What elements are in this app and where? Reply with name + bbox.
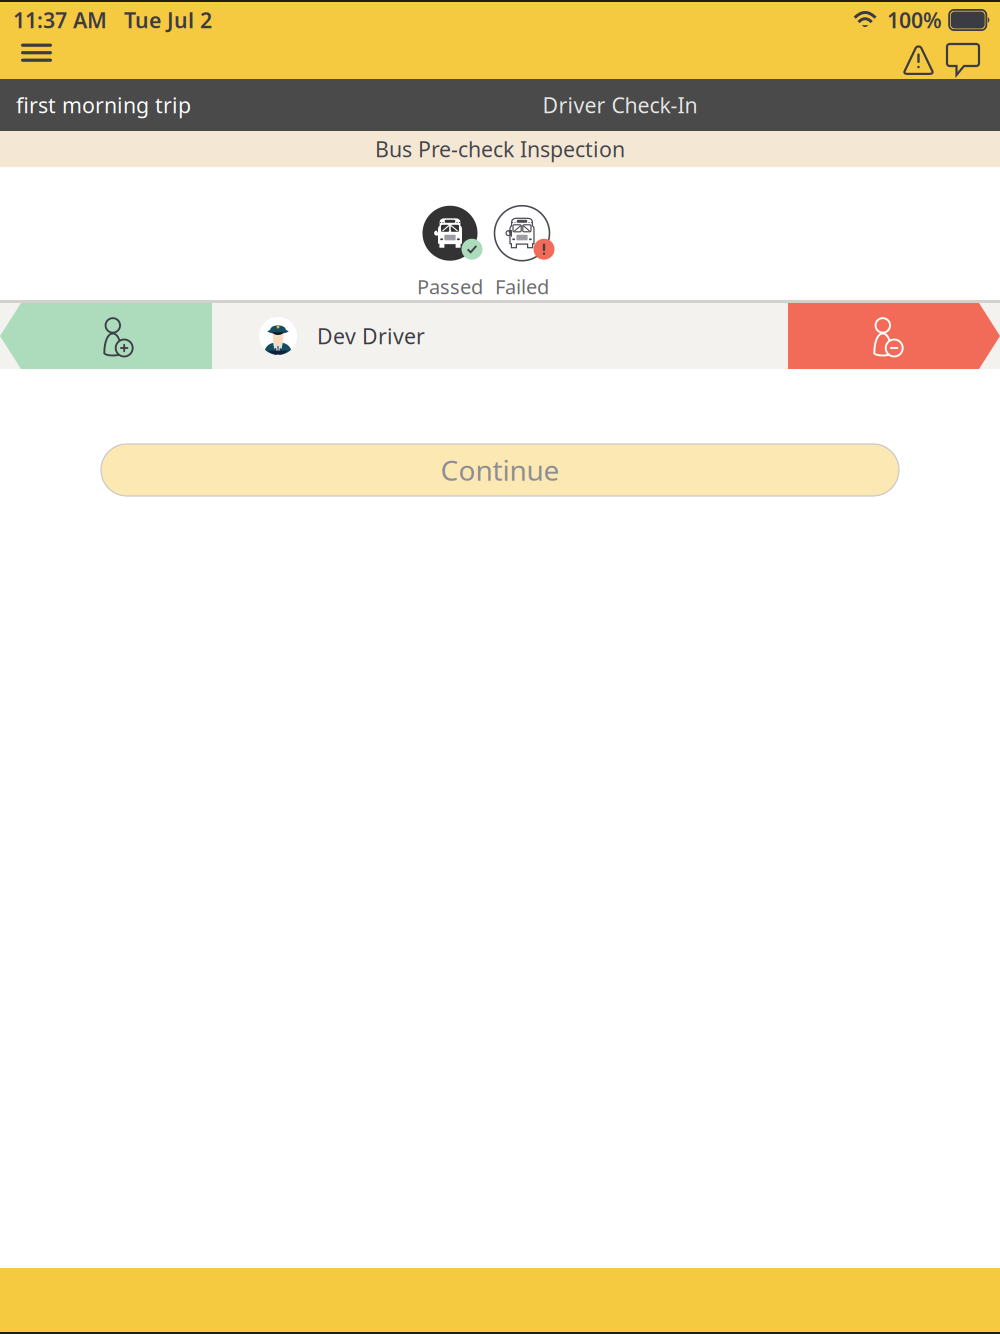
button[interactable]: Menu xyxy=(21,40,52,79)
button[interactable]: Remove driver xyxy=(788,303,1000,369)
staticText: Bus Pre-check Inspection xyxy=(375,135,625,163)
button[interactable]: Continue xyxy=(101,444,899,496)
staticText: Dev Driver xyxy=(317,322,425,350)
staticText: Continue xyxy=(440,451,559,489)
staticText: Driver Check-In xyxy=(542,91,697,119)
staticText: Passed xyxy=(417,273,483,300)
button[interactable]: Passed xyxy=(407,201,493,301)
staticText: Failed xyxy=(495,273,549,300)
button[interactable]: Dev Driver xyxy=(212,303,788,369)
staticText: Tue Jul 2 xyxy=(124,6,212,34)
staticText: 11:37 AM xyxy=(13,6,107,34)
button[interactable]: Add driver xyxy=(0,303,212,369)
button[interactable]: Messages xyxy=(935,44,979,75)
staticText: first morning trip xyxy=(16,91,191,119)
button[interactable]: Alerts xyxy=(902,44,935,75)
button[interactable]: Failed xyxy=(479,201,565,301)
staticText: 100% xyxy=(887,6,942,34)
